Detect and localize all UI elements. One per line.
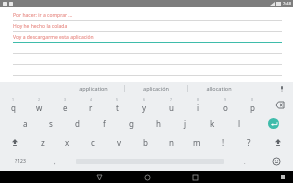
staticText: aplicación bbox=[143, 85, 169, 92]
staticText: p bbox=[250, 102, 255, 113]
staticText: y bbox=[142, 102, 147, 113]
button[interactable]: Space bbox=[69, 152, 230, 171]
staticText: h bbox=[156, 118, 161, 129]
staticText: 9 bbox=[224, 97, 227, 102]
button[interactable]: Shift bbox=[0, 133, 30, 152]
button[interactable]: j bbox=[172, 114, 199, 133]
button[interactable]: Back bbox=[75, 171, 123, 183]
staticText: d bbox=[75, 118, 80, 129]
staticText: 0 bbox=[251, 97, 254, 102]
button[interactable]: s bbox=[38, 114, 64, 133]
button[interactable]: 7 bbox=[158, 95, 185, 114]
staticText: . bbox=[244, 158, 246, 166]
staticText: g bbox=[129, 118, 134, 129]
staticText: Por hacer: ir a comprar ... bbox=[13, 12, 73, 19]
button[interactable]: Emoji bbox=[259, 152, 293, 171]
staticText: q bbox=[11, 102, 16, 113]
staticText: Hoy he hecho la colada bbox=[13, 23, 68, 30]
staticText: v bbox=[117, 137, 122, 148]
button[interactable]: 6 bbox=[131, 95, 158, 114]
staticText: a bbox=[23, 118, 28, 129]
button[interactable]: Voice input bbox=[277, 84, 287, 94]
button[interactable]: Home bbox=[123, 171, 171, 183]
button[interactable]: application bbox=[62, 82, 124, 95]
staticText: m bbox=[193, 137, 201, 148]
staticText: b bbox=[143, 137, 148, 148]
staticText: c bbox=[91, 137, 95, 148]
staticText: 2 bbox=[38, 97, 41, 102]
button[interactable]: Hoy he hecho la colada bbox=[0, 21, 293, 32]
staticText: r bbox=[89, 102, 93, 113]
button[interactable]: b bbox=[132, 133, 158, 152]
button[interactable] bbox=[0, 54, 293, 65]
button[interactable]: , bbox=[40, 152, 69, 171]
button[interactable]: m bbox=[184, 133, 210, 152]
button[interactable]: g bbox=[118, 114, 145, 133]
staticText: 7:48 bbox=[283, 1, 291, 6]
button[interactable]: Recent apps bbox=[171, 171, 219, 183]
button[interactable]: l bbox=[226, 114, 253, 133]
staticText: ?123 bbox=[15, 158, 26, 165]
button[interactable]: allocation bbox=[188, 82, 250, 95]
button[interactable]: h bbox=[145, 114, 172, 133]
button[interactable]: Por hacer: ir a comprar ... bbox=[0, 10, 293, 21]
staticText: w bbox=[36, 102, 43, 113]
staticText: application bbox=[79, 85, 108, 92]
staticText: ! bbox=[222, 137, 225, 148]
button[interactable]: f bbox=[91, 114, 118, 133]
button[interactable]: Shift bbox=[262, 133, 293, 152]
button[interactable]: 4 bbox=[78, 95, 104, 114]
staticText: u bbox=[169, 102, 174, 113]
button[interactable]: c bbox=[80, 133, 106, 152]
button[interactable]: 3 bbox=[52, 95, 78, 114]
button[interactable]: z bbox=[30, 133, 55, 152]
staticText: allocation bbox=[206, 85, 232, 92]
button[interactable]: Enter bbox=[253, 114, 293, 133]
staticText: x bbox=[65, 137, 70, 148]
staticText: ? bbox=[247, 137, 251, 148]
staticText: s bbox=[49, 118, 53, 129]
staticText: 3 bbox=[64, 97, 67, 102]
staticText: k bbox=[210, 118, 215, 129]
button[interactable]: d bbox=[64, 114, 91, 133]
button[interactable] bbox=[0, 43, 293, 54]
staticText: 1 bbox=[12, 97, 15, 102]
button[interactable]: 2 bbox=[26, 95, 52, 114]
button[interactable]: Backspace bbox=[266, 95, 293, 114]
button[interactable]: a bbox=[12, 114, 38, 133]
button[interactable]: Keyboard switcher bbox=[279, 173, 287, 181]
button[interactable]: x bbox=[55, 133, 80, 152]
staticText: f bbox=[103, 118, 106, 129]
button[interactable]: 9 bbox=[212, 95, 239, 114]
staticText: o bbox=[223, 102, 228, 113]
staticText: Voy a descargarme esta aplicación bbox=[13, 34, 94, 41]
staticText: 6 bbox=[143, 97, 146, 102]
staticText: e bbox=[63, 102, 68, 113]
button[interactable]: n bbox=[158, 133, 184, 152]
staticText: 8 bbox=[197, 97, 200, 102]
button[interactable]: aplicación bbox=[125, 82, 187, 95]
staticText: 7 bbox=[170, 97, 173, 102]
button[interactable]: 5 bbox=[104, 95, 131, 114]
button[interactable]: Voy a descargarme esta aplicación bbox=[0, 32, 293, 43]
button[interactable]: ?123 bbox=[0, 152, 40, 171]
button[interactable]: k bbox=[199, 114, 226, 133]
button[interactable]: ? bbox=[236, 133, 262, 152]
staticText: n bbox=[169, 137, 174, 148]
staticText: , bbox=[54, 158, 56, 166]
button[interactable] bbox=[0, 65, 293, 76]
staticText: t bbox=[116, 102, 119, 113]
button[interactable]: 1 bbox=[0, 95, 26, 114]
button[interactable]: 8 bbox=[185, 95, 212, 114]
staticText: i bbox=[197, 102, 200, 113]
staticText: z bbox=[41, 137, 45, 148]
staticText: 4 bbox=[90, 97, 93, 102]
button[interactable]: v bbox=[106, 133, 132, 152]
button[interactable]: ! bbox=[210, 133, 236, 152]
staticText: l bbox=[238, 118, 241, 129]
staticText: 5 bbox=[116, 97, 119, 102]
staticText: j bbox=[184, 118, 187, 129]
button[interactable]: 0 bbox=[239, 95, 266, 114]
